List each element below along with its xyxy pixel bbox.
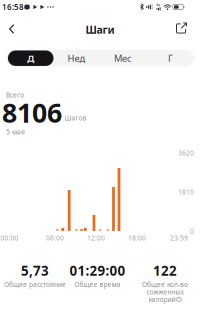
staticText: 23:59 [170,234,188,242]
staticText: 00:00 [0,234,18,242]
staticText: 18:00 [128,234,146,242]
staticText: Vo [157,3,161,7]
staticText: 06:00 [46,234,64,242]
staticText: 12:00 [87,234,105,242]
staticText: 5,73 [21,262,49,279]
staticText: Мес [114,52,132,64]
staticText: 16:58 [2,2,24,12]
button[interactable]: Нед [54,50,100,66]
staticText: Всего [6,91,24,99]
staticText: Д [27,52,34,64]
staticText: 1810 [178,188,194,196]
staticText: Шаги [85,22,114,37]
staticText: 122 [153,262,177,279]
staticText: Общее расстояние [4,280,66,289]
staticText: Общее время [74,280,120,289]
button[interactable]: About calories [176,297,181,302]
staticText: ? [178,297,180,302]
button[interactable]: Г [147,50,193,66]
staticText: сожженных [146,288,183,296]
staticText: Нед [68,52,86,64]
staticText: Общее кол-во [142,280,188,289]
staticText: Шагов [64,114,86,122]
staticText: 0 [190,227,194,236]
staticText: 5 мая [6,128,25,136]
button[interactable]: Мес [100,50,146,66]
staticText: калорий [148,295,175,304]
button[interactable]: Back [4,21,19,36]
button[interactable]: Share [174,21,189,36]
staticText: 8106 [2,95,62,130]
staticText: 01:29:00 [69,262,125,279]
staticText: Г [168,52,173,64]
staticText: 3620 [178,149,194,157]
button[interactable]: Д [8,50,53,66]
